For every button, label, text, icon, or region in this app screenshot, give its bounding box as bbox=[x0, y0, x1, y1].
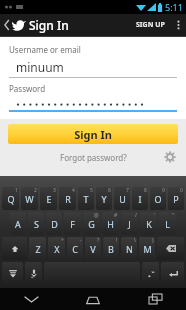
staticText: N bbox=[126, 243, 133, 255]
staticText: Username or email bbox=[9, 44, 81, 55]
staticText: ! bbox=[116, 237, 118, 244]
staticText: 3 bbox=[53, 187, 56, 194]
button[interactable]: Space bbox=[44, 262, 140, 285]
button[interactable]: minuum bbox=[9, 59, 177, 78]
staticText: P bbox=[173, 193, 179, 205]
button[interactable]: Period bbox=[142, 262, 159, 285]
button[interactable]: V bbox=[85, 237, 101, 260]
staticText: I bbox=[138, 193, 142, 205]
button[interactable]: N bbox=[121, 237, 137, 260]
button[interactable] bbox=[9, 99, 177, 112]
button[interactable]: M bbox=[139, 237, 155, 260]
staticText: E bbox=[46, 193, 52, 205]
button[interactable]: W bbox=[21, 187, 38, 210]
button[interactable]: L bbox=[159, 212, 176, 235]
staticText: B bbox=[108, 243, 114, 255]
staticText: Forgot password? bbox=[60, 152, 127, 163]
staticText: ) bbox=[152, 237, 154, 244]
button[interactable]: R bbox=[59, 187, 76, 210]
staticText: ? bbox=[97, 237, 100, 244]
staticText: H bbox=[107, 218, 114, 230]
button[interactable]: T bbox=[78, 187, 94, 210]
staticText: D bbox=[51, 218, 58, 230]
staticText: X bbox=[54, 243, 60, 255]
staticText: \ bbox=[134, 237, 136, 244]
staticText: 6 bbox=[108, 187, 111, 194]
staticText: @ bbox=[94, 212, 99, 219]
button[interactable]: Settings bbox=[162, 149, 178, 165]
staticText: V bbox=[90, 243, 96, 255]
staticText: 1 bbox=[15, 187, 18, 194]
button[interactable]: More options bbox=[170, 14, 186, 36]
staticText: / bbox=[135, 212, 137, 219]
button[interactable]: H bbox=[102, 212, 119, 235]
staticText: G bbox=[88, 218, 95, 230]
staticText: 7 bbox=[126, 187, 129, 194]
staticText: F bbox=[70, 218, 75, 230]
button[interactable]: P bbox=[168, 187, 184, 210]
staticText: " bbox=[172, 212, 175, 219]
staticText: 5:11 bbox=[165, 1, 183, 13]
button[interactable]: Enter bbox=[161, 262, 184, 285]
button[interactable]: G bbox=[83, 212, 100, 235]
button[interactable]: Backspace bbox=[157, 237, 184, 260]
button[interactable]: Forgot password? bbox=[58, 150, 129, 165]
staticText: 5 bbox=[90, 187, 93, 194]
staticText: Password bbox=[9, 83, 46, 94]
button[interactable]: A bbox=[10, 212, 26, 235]
button[interactable]: S bbox=[28, 212, 44, 235]
button[interactable]: Keyboard settings bbox=[2, 262, 23, 285]
staticText: Sign In bbox=[74, 127, 112, 142]
button[interactable]: Recent apps bbox=[124, 288, 186, 310]
staticText: + bbox=[61, 237, 64, 244]
staticText: minuum bbox=[16, 59, 64, 75]
button[interactable]: Sign In bbox=[8, 124, 178, 144]
staticText: S bbox=[34, 218, 39, 230]
button[interactable]: Q bbox=[2, 187, 19, 210]
staticText: L bbox=[165, 218, 170, 230]
staticText: R bbox=[65, 193, 71, 205]
staticText: W bbox=[25, 193, 34, 205]
button[interactable]: Home bbox=[62, 288, 124, 310]
staticText: A bbox=[15, 218, 21, 230]
button[interactable]: E bbox=[40, 187, 57, 210]
button[interactable]: C bbox=[67, 237, 83, 260]
staticText: K bbox=[146, 218, 152, 230]
button[interactable]: Shift bbox=[2, 237, 27, 260]
button[interactable]: Voice input bbox=[25, 262, 42, 285]
staticText: Sign In bbox=[29, 17, 69, 33]
staticText: SIGN UP bbox=[136, 20, 165, 30]
button[interactable]: I bbox=[132, 187, 148, 210]
staticText: Q bbox=[7, 193, 15, 205]
button[interactable]: SIGN UP bbox=[131, 16, 170, 34]
staticText: C bbox=[72, 243, 78, 255]
staticText: Y bbox=[101, 193, 107, 205]
staticText: M bbox=[143, 243, 152, 255]
staticText: ' bbox=[154, 212, 156, 219]
staticText: U bbox=[119, 193, 126, 205]
staticText: O bbox=[154, 193, 162, 205]
staticText: 9 bbox=[162, 187, 165, 194]
button[interactable]: J bbox=[121, 212, 138, 235]
button[interactable]: U bbox=[114, 187, 130, 210]
staticText: 2 bbox=[34, 187, 37, 194]
staticText: 4 bbox=[72, 187, 75, 194]
staticText: J bbox=[128, 218, 131, 230]
staticText: 0 bbox=[180, 187, 183, 194]
staticText: - bbox=[80, 237, 82, 244]
staticText: Z bbox=[35, 243, 41, 255]
button[interactable]: Back bbox=[2, 17, 71, 33]
staticText: 8 bbox=[144, 187, 147, 194]
button[interactable]: Y bbox=[96, 187, 112, 210]
button[interactable]: Z bbox=[29, 237, 46, 260]
button[interactable]: X bbox=[48, 237, 65, 260]
button[interactable]: Hide keyboard bbox=[0, 288, 62, 310]
button[interactable]: K bbox=[140, 212, 157, 235]
button[interactable]: B bbox=[103, 237, 119, 260]
button[interactable]: D bbox=[46, 212, 62, 235]
button[interactable]: F bbox=[64, 212, 81, 235]
staticText: T bbox=[83, 193, 89, 205]
staticText: # bbox=[114, 212, 118, 219]
button[interactable]: O bbox=[150, 187, 166, 210]
